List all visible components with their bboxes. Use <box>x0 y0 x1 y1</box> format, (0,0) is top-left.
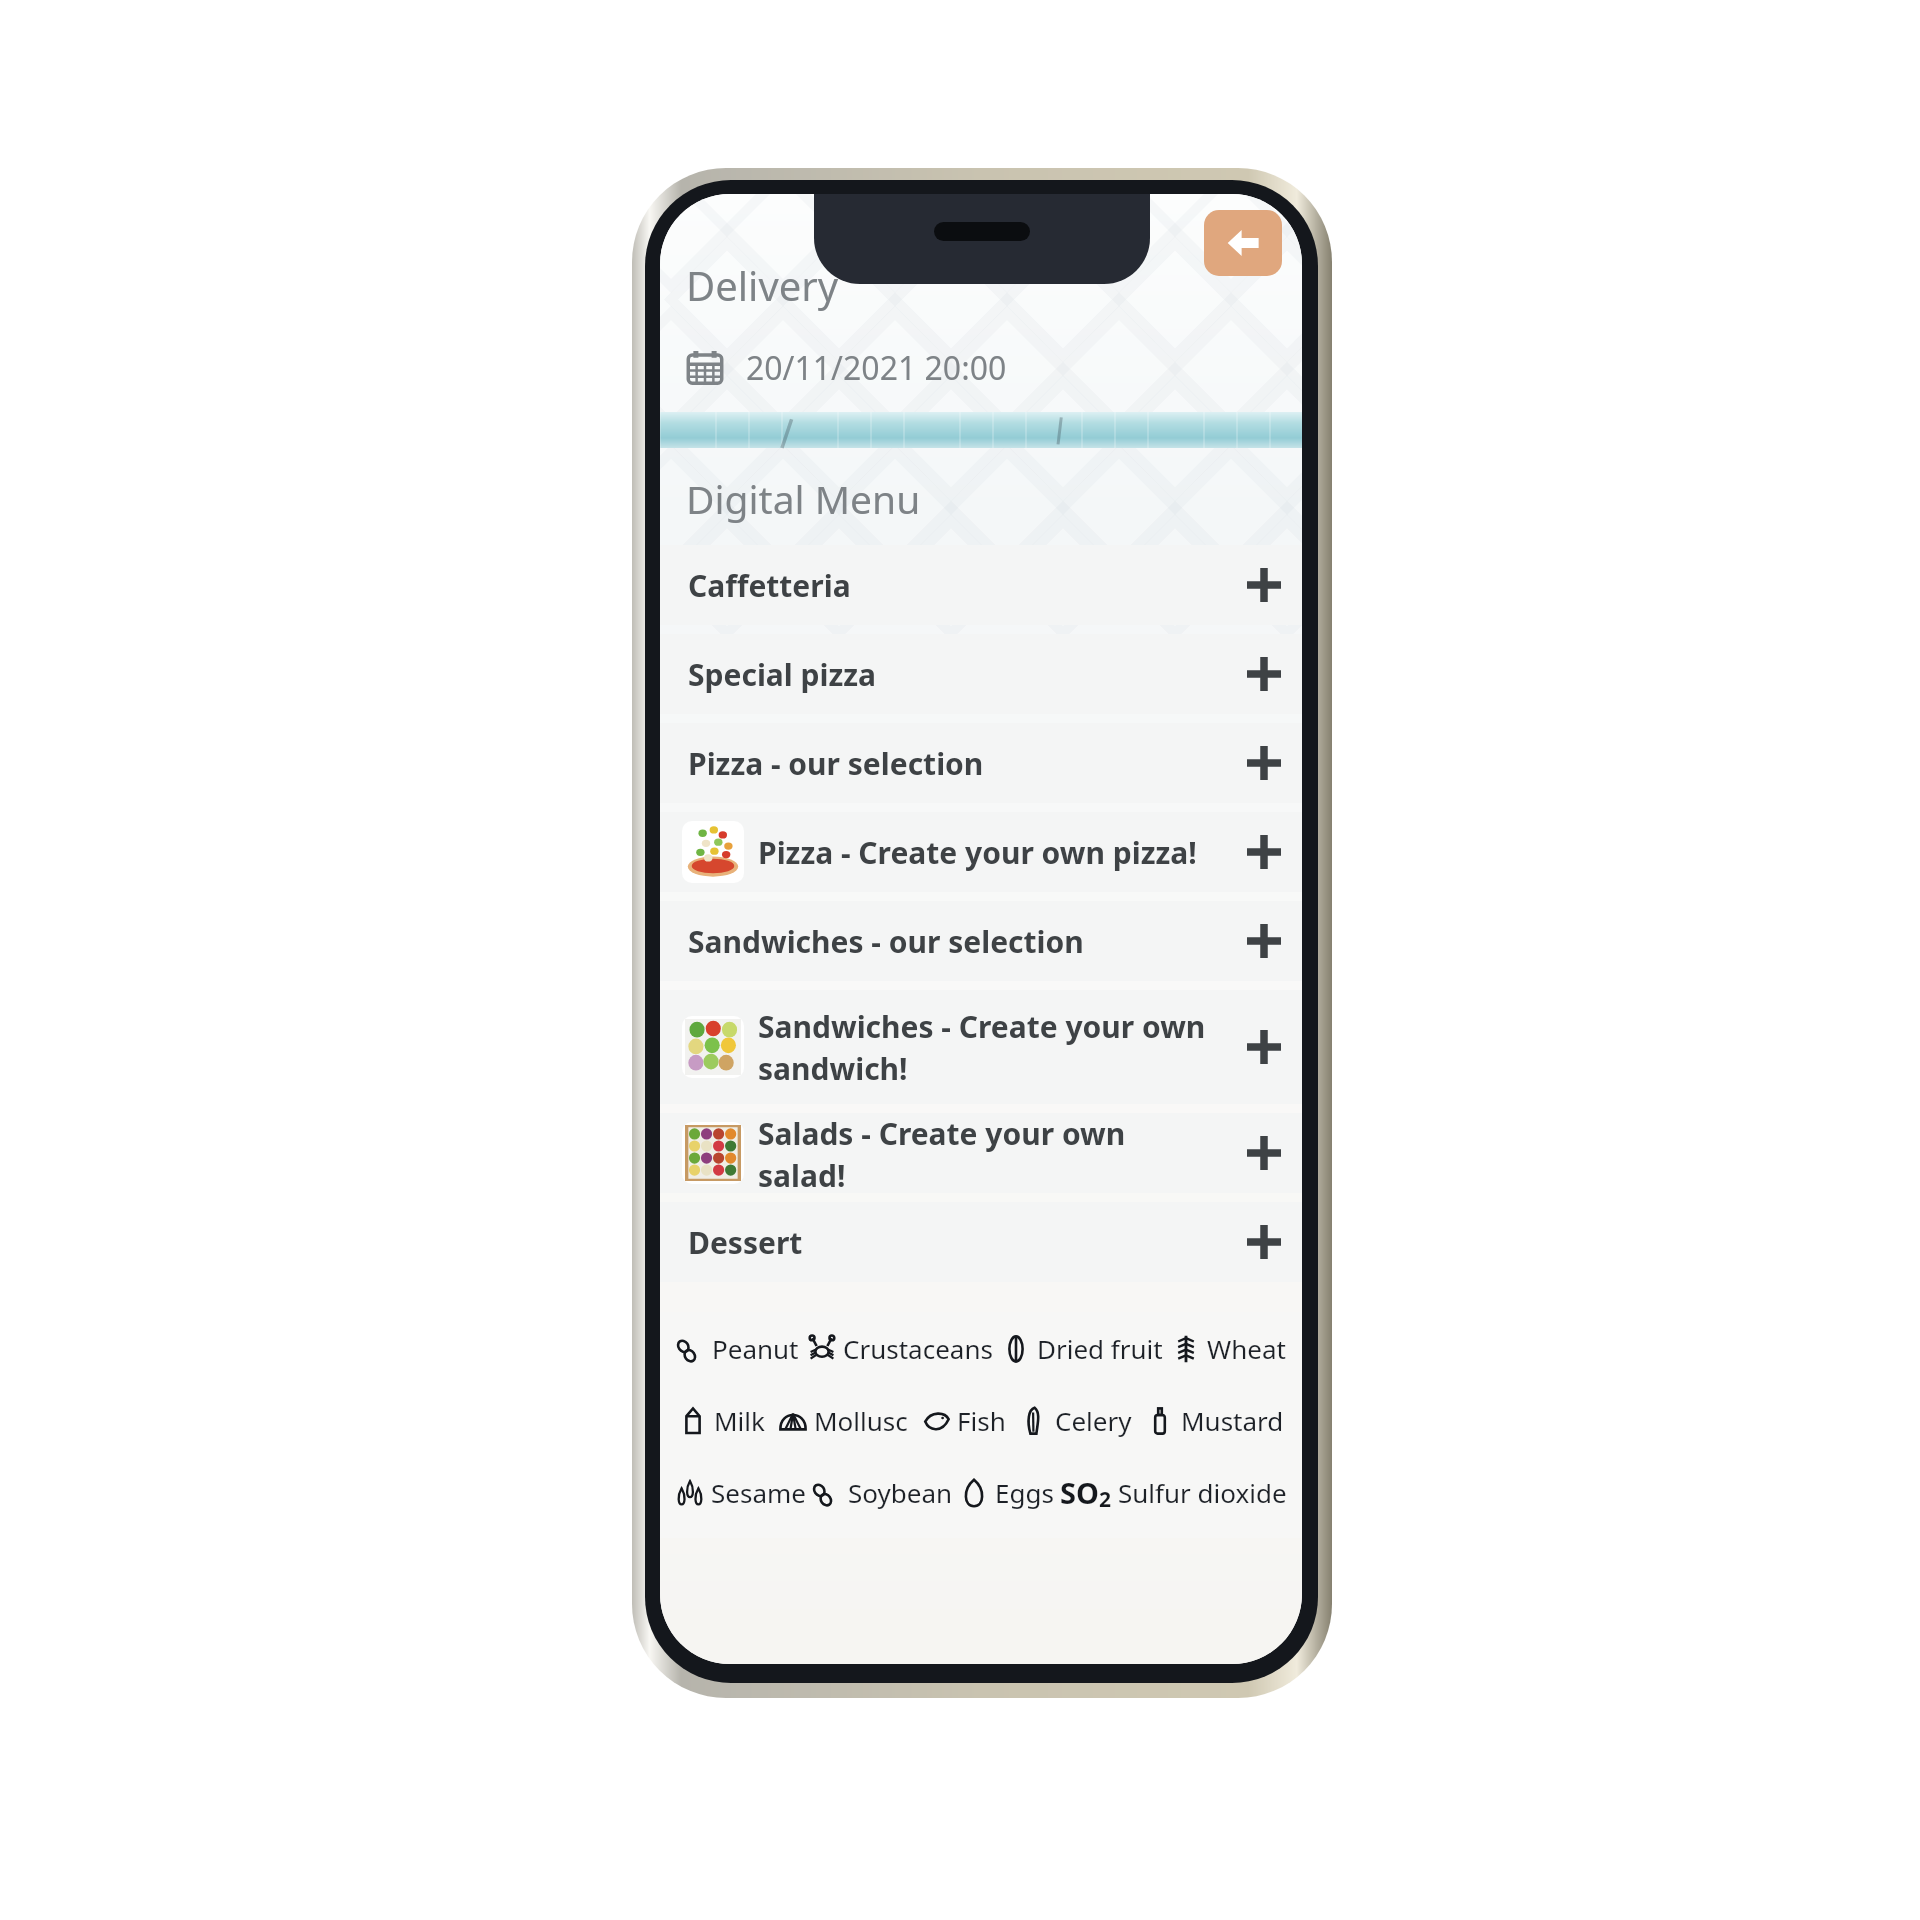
staticText: Soybean <box>848 1475 953 1510</box>
staticText: Eggs <box>995 1475 1054 1510</box>
staticText: Milk <box>714 1403 765 1438</box>
button[interactable]: Crustaceans <box>807 1331 993 1366</box>
staticText: Peanut <box>712 1331 799 1366</box>
button[interactable]: Expand Sandwiches - Create your own sand… <box>1226 990 1302 1104</box>
staticText: 2 <box>1099 1485 1112 1514</box>
button[interactable]: SO <box>1060 1473 1287 1512</box>
button[interactable]: Peanut <box>676 1331 799 1366</box>
button[interactable]: Fish <box>921 1403 1006 1438</box>
button[interactable]: Milk <box>678 1403 765 1438</box>
staticText: Pizza - Create your own pizza! <box>758 832 1216 873</box>
button[interactable]: Dessert <box>660 1202 1302 1282</box>
staticText: Caffetteria <box>688 565 1216 606</box>
button[interactable]: Celery <box>1019 1403 1132 1438</box>
button[interactable]: Pizza - our selection <box>660 723 1302 803</box>
staticText: Dried fruit <box>1037 1331 1163 1366</box>
staticText: Wheat <box>1207 1331 1286 1366</box>
staticText: Crustaceans <box>843 1331 993 1366</box>
button[interactable]: Special pizza <box>660 634 1302 714</box>
staticText: Mollusc <box>814 1403 908 1438</box>
button[interactable]: Sandwiches - our selection <box>660 901 1302 981</box>
staticText: Sulfur dioxide <box>1118 1475 1287 1510</box>
button[interactable]: Expand Pizza - Create your own pizza! <box>1226 812 1302 892</box>
staticText: Dessert <box>688 1222 1216 1263</box>
button[interactable]: Expand Special pizza <box>1226 634 1302 714</box>
staticText: Mustard <box>1181 1403 1284 1438</box>
staticText: Digital Menu <box>686 472 921 525</box>
button[interactable]: Mustard <box>1145 1403 1284 1438</box>
staticText: Special pizza <box>688 654 1216 695</box>
button[interactable]: Eggs <box>959 1475 1054 1510</box>
staticText: Sandwiches - our selection <box>688 921 1216 962</box>
staticText: Pizza - our selection <box>688 743 1216 784</box>
staticText: Celery <box>1055 1403 1132 1438</box>
button[interactable]: Pizza - Create your own pizza! <box>660 812 1302 892</box>
staticText: SO <box>1060 1473 1099 1512</box>
button[interactable]: Dried fruit <box>1001 1331 1163 1366</box>
staticText: Delivery <box>686 258 839 312</box>
button[interactable]: Sandwiches - Create your own sandwich! <box>660 990 1302 1104</box>
button[interactable]: Soybean <box>812 1475 953 1510</box>
button[interactable]: Expand Sandwiches - our selection <box>1226 901 1302 981</box>
staticText: Salads - Create your own salad! <box>758 1113 1216 1193</box>
button[interactable]: Expand Caffetteria <box>1226 545 1302 625</box>
button[interactable]: 20/11/2021 20:00 <box>660 324 1302 412</box>
button[interactable]: Salads - Create your own salad! <box>660 1113 1302 1193</box>
button[interactable]: Caffetteria <box>660 545 1302 625</box>
button[interactable]: Back <box>1204 210 1282 276</box>
button[interactable]: Expand Salads - Create your own salad! <box>1226 1113 1302 1193</box>
staticText: Fish <box>957 1403 1006 1438</box>
button[interactable]: Expand Pizza - our selection <box>1226 723 1302 803</box>
staticText: Sesame <box>711 1475 806 1510</box>
button[interactable]: Mollusc <box>778 1403 908 1438</box>
button[interactable]: Expand Dessert <box>1226 1202 1302 1282</box>
button[interactable]: Sesame <box>675 1475 806 1510</box>
staticText: 20/11/2021 20:00 <box>746 346 1007 390</box>
button[interactable]: Wheat <box>1171 1331 1286 1366</box>
staticText: Sandwiches - Create your own sandwich! <box>758 1006 1216 1089</box>
